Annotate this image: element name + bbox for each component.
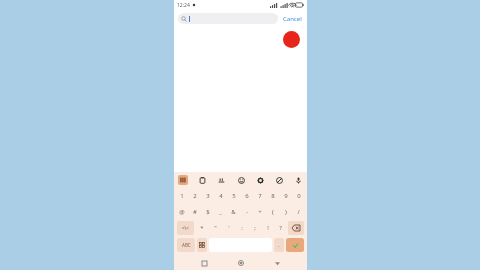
staticText: (: [272, 208, 274, 216]
button[interactable]: Back: [271, 257, 283, 269]
staticText: 0: [297, 192, 301, 200]
button[interactable]: 1: [177, 189, 187, 203]
staticText: +: [258, 208, 262, 216]
button[interactable]: Translate: [216, 175, 226, 185]
staticText: ;: [254, 224, 256, 232]
button[interactable]: +: [254, 205, 265, 219]
staticText: 7: [258, 192, 262, 200]
staticText: =\<: [182, 225, 189, 231]
button[interactable]: ?: [275, 221, 286, 235]
button[interactable]: &: [228, 205, 239, 219]
button[interactable]: /: [293, 205, 304, 219]
button[interactable]: [178, 13, 278, 24]
staticText: 4: [219, 192, 223, 200]
button[interactable]: (: [267, 205, 278, 219]
staticText: #: [193, 208, 197, 216]
staticText: Cancel: [283, 15, 302, 23]
button[interactable]: ;: [249, 221, 260, 235]
staticText: ): [285, 208, 287, 216]
staticText: .: [278, 241, 280, 249]
button[interactable]: ABC: [177, 238, 195, 252]
button[interactable]: -: [241, 205, 252, 219]
staticText: 3: [206, 192, 210, 200]
button[interactable]: Symbols grid: [197, 238, 207, 252]
staticText: ABC: [182, 242, 191, 248]
button[interactable]: :: [236, 221, 247, 235]
staticText: 9: [284, 192, 288, 200]
button[interactable]: Theme: [274, 175, 284, 185]
button[interactable]: Sticker: [236, 175, 246, 185]
button[interactable]: *: [196, 221, 208, 235]
button[interactable]: 9: [280, 189, 291, 203]
staticText: -: [246, 208, 248, 216]
button[interactable]: Record: [283, 31, 300, 48]
staticText: 8: [271, 192, 275, 200]
staticText: 1: [180, 192, 184, 200]
button[interactable]: 8: [267, 189, 278, 203]
button[interactable]: 2: [189, 189, 200, 203]
staticText: 5: [232, 192, 236, 200]
staticText: 12:24: [177, 2, 190, 9]
button[interactable]: ': [223, 221, 234, 235]
button[interactable]: Home: [235, 257, 247, 269]
button[interactable]: Enter: [286, 238, 304, 252]
button[interactable]: !: [262, 221, 273, 235]
button[interactable]: ": [210, 221, 221, 235]
staticText: ': [228, 224, 230, 232]
staticText: $: [206, 208, 210, 216]
staticText: &: [231, 208, 236, 216]
button[interactable]: Cancel: [282, 13, 303, 25]
button[interactable]: @: [177, 205, 187, 219]
staticText: :: [241, 224, 243, 232]
button[interactable]: Recents: [198, 257, 210, 269]
staticText: /: [297, 208, 300, 216]
button[interactable]: =\<: [177, 221, 194, 235]
button[interactable]: 5: [228, 189, 239, 203]
button[interactable]: Settings: [255, 175, 265, 185]
staticText: _: [219, 208, 222, 216]
button[interactable]: Backspace: [288, 221, 304, 235]
button[interactable]: 7: [254, 189, 265, 203]
button[interactable]: 6: [241, 189, 252, 203]
staticText: @: [179, 208, 185, 216]
staticText: *: [200, 224, 204, 232]
button[interactable]: Keyboard modes: [178, 175, 188, 185]
button[interactable]: ): [280, 205, 291, 219]
button[interactable]: Clipboard: [197, 175, 207, 185]
staticText: ?: [279, 224, 282, 232]
button[interactable]: #: [189, 205, 200, 219]
staticText: !: [267, 224, 269, 232]
button[interactable]: _: [215, 205, 226, 219]
staticText: 6: [245, 192, 249, 200]
staticText: ": [214, 224, 217, 232]
button[interactable]: Voice input: [293, 175, 303, 185]
button[interactable]: $: [202, 205, 213, 219]
staticText: 2: [193, 192, 197, 200]
button[interactable]: 3: [202, 189, 213, 203]
button[interactable]: 4: [215, 189, 226, 203]
button[interactable]: 0: [293, 189, 304, 203]
button[interactable]: .: [274, 238, 284, 252]
